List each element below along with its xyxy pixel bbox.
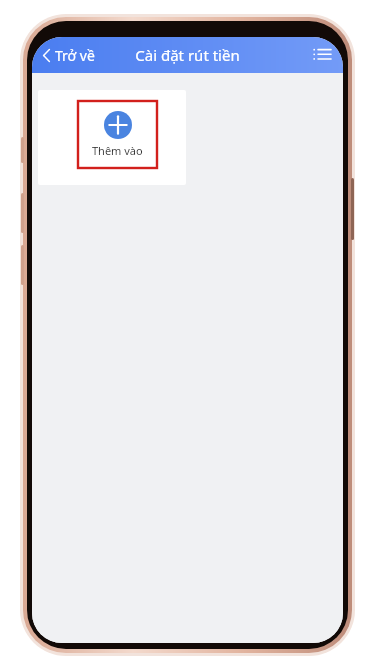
staticText: Trở về	[55, 46, 95, 65]
staticText: Cài đặt rút tiền	[135, 45, 240, 65]
button[interactable]: Menu	[309, 44, 335, 66]
staticText: Thêm vào	[92, 143, 143, 158]
button[interactable]: Thêm vào	[78, 101, 157, 168]
button[interactable]: Trở về	[38, 42, 99, 69]
